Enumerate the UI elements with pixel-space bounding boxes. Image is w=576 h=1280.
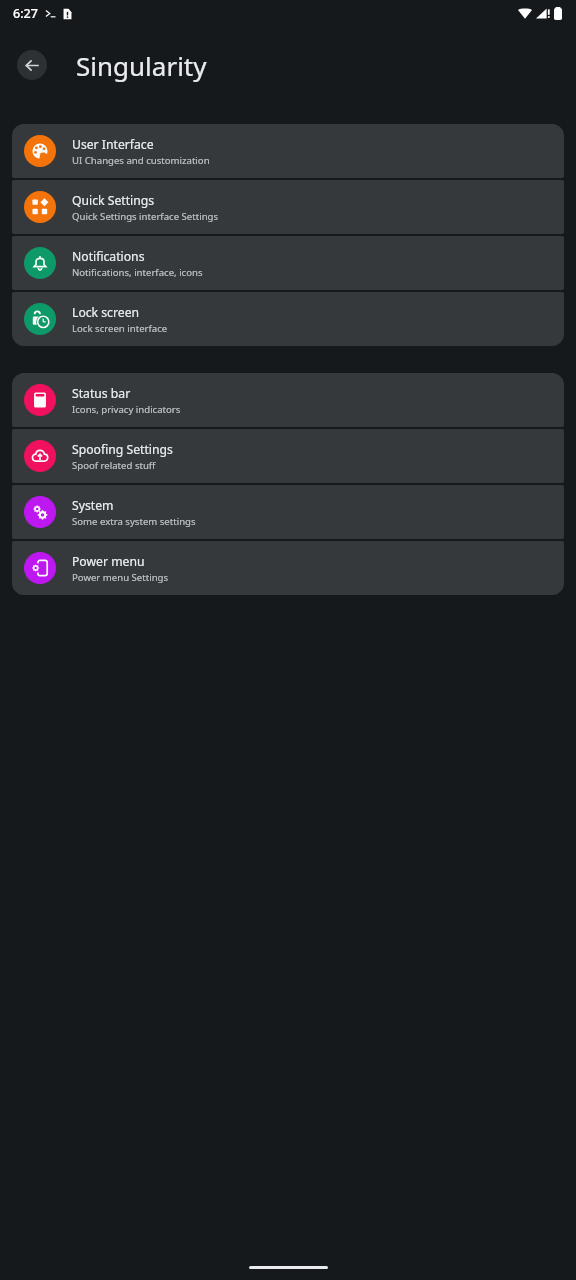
staticText: Spoof related stuff <box>72 459 156 472</box>
staticText: Singularity <box>76 48 207 83</box>
button[interactable]: Lock screen <box>12 292 564 346</box>
staticText: Spoofing Settings <box>72 441 173 458</box>
button[interactable]: Notifications <box>12 236 564 290</box>
staticText: System <box>72 497 114 514</box>
staticText: Status bar <box>72 385 131 402</box>
staticText: Lock screen <box>72 304 140 321</box>
staticText: Icons, privacy indicators <box>72 403 181 416</box>
button[interactable]: Back <box>17 50 47 80</box>
button[interactable]: Spoofing Settings <box>12 429 564 483</box>
button[interactable]: System <box>12 485 564 539</box>
staticText: Power menu <box>72 553 145 570</box>
staticText: Notifications <box>72 248 145 265</box>
staticText: Power menu Settings <box>72 571 169 584</box>
staticText: User Interface <box>72 136 154 153</box>
staticText: Lock screen interface <box>72 322 168 335</box>
button[interactable]: Power menu <box>12 541 564 595</box>
button[interactable]: User Interface <box>12 124 564 178</box>
staticText: 6:27 <box>13 5 38 22</box>
staticText: Quick Settings <box>72 192 155 209</box>
button[interactable]: Status bar <box>12 373 564 427</box>
button[interactable]: Quick Settings <box>12 180 564 234</box>
staticText: Quick Settings interface Settings <box>72 210 219 223</box>
staticText: Some extra system settings <box>72 515 196 528</box>
staticText: Notifications, interface, icons <box>72 266 203 279</box>
staticText: UI Changes and customization <box>72 154 210 167</box>
